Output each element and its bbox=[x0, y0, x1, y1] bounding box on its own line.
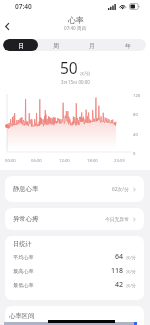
staticText: 日统计 bbox=[13, 240, 32, 248]
staticText: 异常心搏 bbox=[13, 215, 39, 223]
staticText: 12:00 bbox=[59, 158, 70, 164]
button[interactable]: 年 bbox=[110, 39, 146, 51]
staticText: 3月15日 00:00 bbox=[61, 79, 90, 85]
staticText: 次/分 bbox=[80, 70, 91, 76]
staticText: 静息心率 bbox=[13, 185, 39, 193]
button[interactable]: 异常心搏 bbox=[5, 208, 144, 230]
staticText: 23:59 bbox=[114, 158, 125, 164]
staticText: 120 bbox=[133, 93, 141, 99]
staticText: 118 bbox=[111, 266, 124, 276]
staticText: 周 bbox=[53, 42, 59, 49]
staticText: 42 bbox=[115, 280, 124, 290]
staticText: 今日无异常 bbox=[105, 216, 129, 222]
staticText: 月 bbox=[89, 42, 95, 49]
staticText: 日 bbox=[18, 42, 24, 49]
staticText: 最高心率 bbox=[13, 268, 34, 275]
staticText: 40 bbox=[133, 132, 138, 138]
staticText: 50 bbox=[60, 57, 78, 78]
staticText: 07:40 周四 bbox=[64, 25, 87, 31]
staticText: 07:40 bbox=[15, 2, 32, 11]
button[interactable]: 周 bbox=[38, 39, 74, 51]
staticText: 次/分 bbox=[126, 255, 136, 261]
staticText: 最低心率 bbox=[13, 282, 34, 289]
staticText: 80 bbox=[133, 112, 138, 118]
button[interactable]: 日 bbox=[3, 39, 38, 51]
button[interactable]: 静息心率 bbox=[5, 176, 144, 202]
staticText: 年 bbox=[125, 42, 131, 49]
button[interactable]: 月 bbox=[74, 39, 110, 51]
staticText: 00:00 bbox=[5, 158, 16, 164]
staticText: 18:00 bbox=[87, 158, 98, 164]
staticText: 62次/分 bbox=[112, 186, 129, 193]
button[interactable]: Back bbox=[0, 16, 17, 36]
staticText: 心率 bbox=[68, 15, 84, 25]
staticText: 0 bbox=[133, 151, 136, 157]
staticText: 平均心率 bbox=[13, 254, 34, 261]
staticText: 次/分 bbox=[126, 283, 136, 289]
staticText: 64 bbox=[115, 252, 124, 262]
staticText: 心率区间 bbox=[9, 312, 35, 320]
staticText: 06:00 bbox=[31, 158, 42, 164]
staticText: 次/分 bbox=[126, 269, 136, 275]
